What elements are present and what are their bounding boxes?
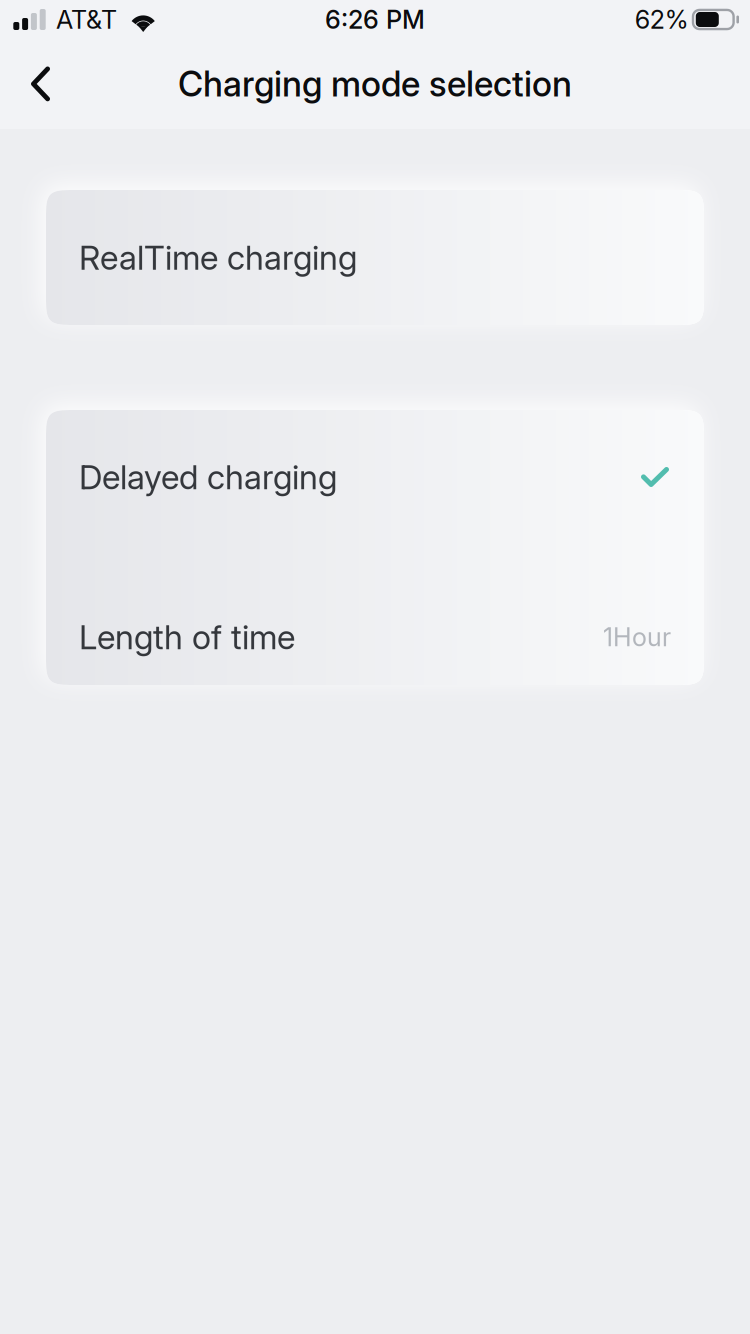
button[interactable]: Back <box>0 49 76 118</box>
staticText: Charging mode selection <box>178 63 572 105</box>
staticText: 6:26 PM <box>325 4 425 35</box>
staticText: Delayed charging <box>79 457 337 497</box>
staticText: AT&T <box>56 4 117 35</box>
button[interactable]: RealTime charging <box>46 190 704 325</box>
button[interactable]: Length of time <box>46 544 704 685</box>
staticText: 62% <box>635 4 689 35</box>
staticText: 1Hour <box>603 622 671 652</box>
staticText: RealTime charging <box>79 237 357 278</box>
staticText: Length of time <box>79 617 295 657</box>
button[interactable]: Delayed charging <box>46 410 704 544</box>
